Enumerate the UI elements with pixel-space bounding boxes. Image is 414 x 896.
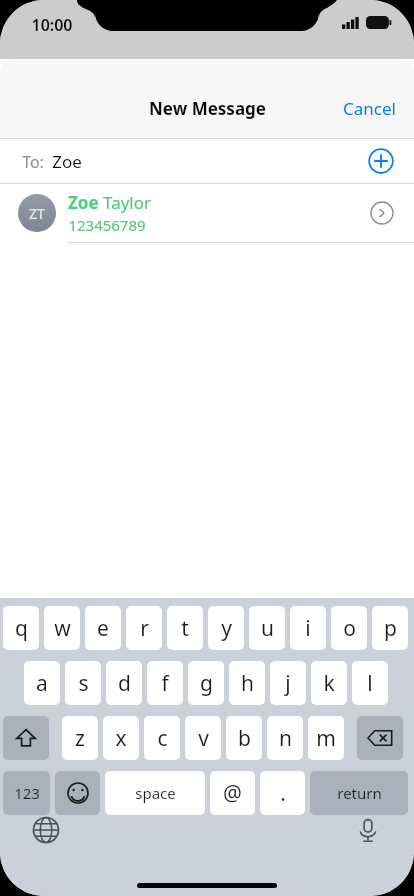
staticText: x [115, 724, 127, 753]
button[interactable]: m [308, 716, 344, 760]
button[interactable]: 123 [3, 771, 50, 815]
other: Emoji [67, 782, 89, 804]
button[interactable]: Shift [3, 716, 49, 760]
button[interactable]: p [372, 606, 408, 650]
button[interactable]: j [270, 661, 306, 705]
button[interactable]: n [267, 716, 303, 760]
staticText: @ [223, 779, 242, 808]
staticText: New Message [149, 97, 266, 120]
staticText: c [157, 724, 168, 753]
button[interactable]: z [62, 716, 98, 760]
button[interactable]: Emoji [55, 771, 100, 815]
button[interactable]: a [24, 661, 60, 705]
button[interactable]: x [103, 716, 139, 760]
staticText: l [367, 669, 373, 698]
button[interactable]: s [65, 661, 101, 705]
staticText: q [15, 614, 28, 643]
staticText: f [161, 669, 169, 698]
staticText: . [280, 779, 286, 808]
button[interactable]: Change keyboard language [32, 816, 60, 844]
button[interactable]: return [310, 771, 408, 815]
staticText: d [118, 669, 131, 698]
staticText: Cancel [343, 97, 396, 120]
staticText: return [337, 783, 382, 803]
button[interactable]: Add contact [368, 148, 394, 174]
button[interactable]: b [226, 716, 262, 760]
button[interactable]: Backspace [357, 716, 403, 760]
staticText: y [221, 614, 232, 643]
button[interactable]: g [188, 661, 224, 705]
button[interactable]: Contact details [370, 201, 394, 225]
staticText: e [97, 614, 109, 643]
staticText: Zoe Taylor [68, 191, 152, 214]
staticText: n [279, 724, 292, 753]
staticText: t [181, 614, 189, 643]
staticText: r [140, 614, 149, 643]
button[interactable]: u [249, 606, 285, 650]
staticText: To: [22, 151, 44, 173]
staticText: o [343, 614, 356, 643]
button[interactable]: d [106, 661, 142, 705]
button[interactable]: i [290, 606, 326, 650]
button[interactable]: t [167, 606, 203, 650]
staticText: m [316, 724, 336, 753]
button[interactable]: Cancel [325, 91, 414, 126]
staticText: p [384, 614, 397, 643]
button[interactable]: q [3, 606, 39, 650]
staticText: g [200, 669, 213, 698]
button[interactable]: h [229, 661, 265, 705]
staticText: i [305, 614, 311, 643]
staticText: j [285, 669, 291, 698]
staticText: w [54, 614, 71, 643]
button[interactable]: l [352, 661, 388, 705]
button[interactable]: c [144, 716, 180, 760]
staticText: h [241, 669, 254, 698]
staticText: k [323, 669, 335, 698]
button[interactable]: y [208, 606, 244, 650]
button[interactable]: f [147, 661, 183, 705]
button[interactable]: @ [210, 771, 255, 815]
staticText: 10:00 [31, 14, 73, 36]
button[interactable]: r [126, 606, 162, 650]
button[interactable]: w [44, 606, 80, 650]
button[interactable]: Dictate [354, 816, 382, 844]
staticText: b [238, 724, 251, 753]
staticText: s [78, 669, 89, 698]
staticText: ZT [29, 204, 45, 223]
staticText: 123456789 [68, 215, 146, 235]
staticText: v [198, 724, 209, 753]
button[interactable]: To: [0, 139, 414, 183]
staticText: space [135, 783, 176, 803]
button[interactable]: . [260, 771, 305, 815]
button[interactable]: space [105, 771, 205, 815]
staticText: u [261, 614, 274, 643]
button[interactable]: ZT [0, 184, 414, 242]
staticText: Zoe [52, 150, 82, 173]
staticText: z [75, 724, 85, 753]
button[interactable]: e [85, 606, 121, 650]
staticText: 123 [14, 783, 40, 803]
staticText: a [36, 669, 48, 698]
button[interactable]: v [185, 716, 221, 760]
other: Backspace [367, 725, 393, 751]
button[interactable]: o [331, 606, 367, 650]
other: Shift [15, 727, 37, 749]
button[interactable]: k [311, 661, 347, 705]
